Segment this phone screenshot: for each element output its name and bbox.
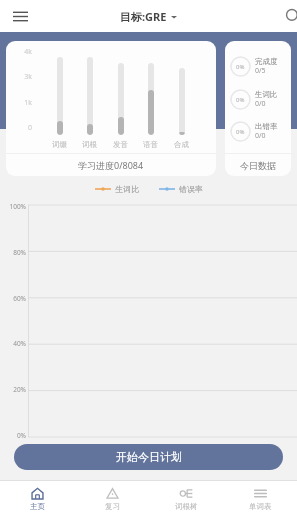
staticText: 目标:GRE (120, 9, 167, 24)
button[interactable]: 主页 (0, 481, 75, 516)
button[interactable]: 4k (6, 41, 216, 176)
staticText: 合成 (174, 140, 189, 149)
staticText: 60% (0, 294, 26, 303)
staticText: 词根 (82, 140, 97, 149)
staticText: 单词表 (249, 502, 272, 511)
staticText: 生词比 (255, 90, 278, 99)
button[interactable]: 开始今日计划 (14, 444, 283, 470)
button[interactable]: 目标:GRE (120, 9, 177, 24)
button[interactable]: 0% (225, 41, 291, 176)
staticText: 4k (6, 47, 32, 57)
staticText: 开始今日计划 (116, 450, 182, 464)
staticText: 出错率 (255, 122, 278, 131)
button[interactable]: 复习 (75, 481, 149, 516)
button[interactable]: Menu (6, 2, 34, 30)
staticText: 主页 (30, 502, 45, 511)
staticText: 生词比 (115, 184, 139, 194)
staticText: 词根树 (175, 502, 198, 511)
staticText: 0% (236, 63, 245, 71)
staticText: 40% (0, 339, 26, 348)
staticText: 80% (0, 248, 26, 257)
staticText: 复习 (105, 502, 120, 511)
staticText: 0% (236, 128, 245, 136)
button[interactable]: 词根树 (149, 481, 223, 516)
staticText: 100% (0, 202, 26, 211)
staticText: 20% (0, 385, 26, 394)
staticText: 语音 (143, 140, 158, 149)
button[interactable]: Search (279, 2, 297, 30)
staticText: 0/0 (255, 131, 266, 141)
staticText: 3k (6, 72, 32, 82)
staticText: 0/5 (255, 66, 266, 76)
staticText: 词缀 (52, 140, 67, 149)
staticText: 0% (0, 431, 26, 440)
button[interactable]: 单词表 (223, 481, 297, 516)
staticText: 1k (6, 98, 32, 108)
staticText: 今日数据 (240, 160, 276, 171)
staticText: 完成度 (255, 57, 278, 66)
staticText: 0/0 (255, 99, 266, 109)
staticText: 发音 (113, 140, 128, 149)
staticText: 错误率 (179, 184, 203, 194)
staticText: 0 (6, 123, 32, 133)
staticText: 学习进度0/8084 (78, 159, 144, 171)
staticText: 0% (236, 96, 245, 104)
